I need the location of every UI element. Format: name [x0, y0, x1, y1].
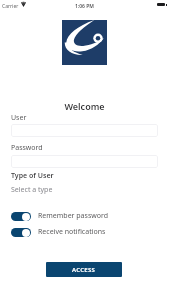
button[interactable]: Remember password	[11, 211, 109, 221]
staticText: Type of User	[11, 171, 54, 181]
staticText: Welcome	[0, 100, 169, 112]
other: Wi-Fi	[21, 2, 26, 7]
staticText: Remember password	[38, 211, 109, 221]
button[interactable]: ACCESS	[46, 262, 122, 277]
staticText: ACCESS	[72, 266, 96, 274]
staticText: Carrier	[2, 3, 19, 10]
staticText: 1:06 PM	[75, 3, 94, 10]
staticText: Password	[11, 143, 43, 153]
staticText: User	[11, 113, 27, 123]
button[interactable]	[11, 155, 158, 168]
staticText: Select a type	[11, 185, 53, 195]
button[interactable]	[11, 124, 158, 137]
button[interactable]: Receive notifications	[11, 227, 106, 237]
button[interactable]: Select a type	[11, 185, 53, 195]
staticText: Receive notifications	[38, 227, 106, 237]
